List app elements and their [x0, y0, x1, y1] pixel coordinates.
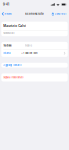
staticText: +1 888 041 3372	[21, 52, 37, 55]
staticText: Sconosciuto	[25, 12, 44, 15]
staticText: Condividi	[55, 12, 67, 15]
button[interactable]: Recenti	[0, 9, 12, 18]
staticText: mobile	[25, 44, 32, 47]
button[interactable]: Aggiungi contatto	[0, 63, 69, 68]
button[interactable]: Segnala indesiderato	[0, 73, 69, 81]
staticText: chiama	[3, 52, 10, 55]
staticText: Sconosciuto	[3, 32, 14, 35]
staticText: Maurizio Calvi	[3, 24, 26, 28]
button[interactable]: chiama	[1, 50, 68, 57]
staticText: 9:41	[3, 3, 9, 6]
staticText: Segnala indesiderato	[3, 76, 23, 79]
staticText: Telefono	[3, 44, 11, 47]
staticText: Aggiungi contatto	[3, 64, 21, 67]
button[interactable]: Condividi	[52, 9, 69, 18]
staticText: Recenti	[4, 12, 12, 15]
